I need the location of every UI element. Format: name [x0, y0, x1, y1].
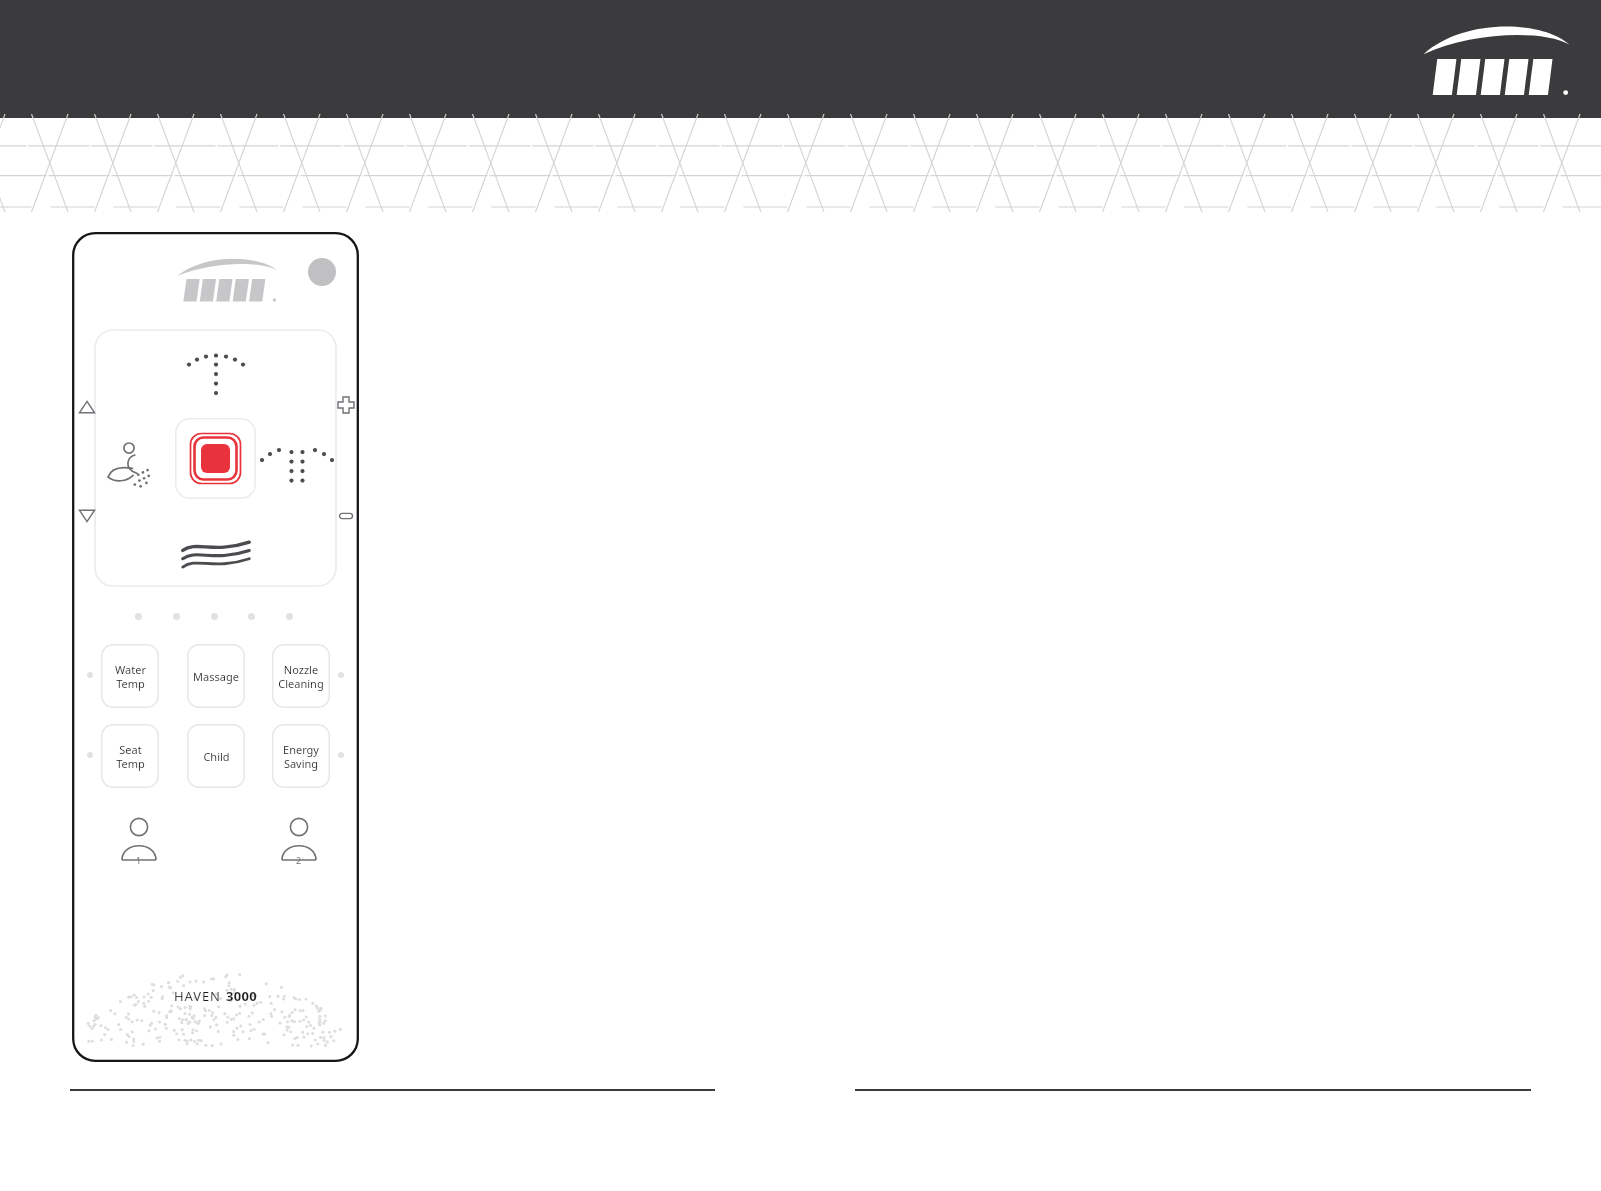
button[interactable]: Minus — [334, 504, 358, 528]
staticText: Massage — [193, 669, 239, 684]
staticText: Child — [203, 749, 230, 764]
button[interactable]: Child — [187, 724, 245, 788]
button[interactable]: Dryer — [179, 527, 253, 573]
staticText: HAVEN — [174, 987, 226, 1005]
button[interactable]: Increase — [74, 395, 100, 421]
button[interactable]: Front wash — [261, 435, 333, 489]
staticText: Seat Temp — [116, 742, 145, 771]
button[interactable]: User preset 2 — [274, 810, 324, 866]
staticText: 1 — [136, 854, 142, 866]
button[interactable]: Energy Saving — [272, 724, 330, 788]
button[interactable]: Plus — [334, 393, 358, 417]
button[interactable]: Water Temp — [101, 644, 159, 708]
staticText: 2 — [296, 854, 302, 866]
button[interactable]: Rear wash — [181, 341, 251, 397]
button[interactable]: Stop — [175, 418, 256, 499]
staticText: Energy Saving — [283, 742, 319, 771]
button[interactable]: Massage — [187, 644, 245, 708]
button[interactable]: Seat wash — [100, 433, 158, 491]
button[interactable]: Seat Temp — [101, 724, 159, 788]
button[interactable]: User preset 1 — [114, 810, 164, 866]
button[interactable]: Decrease — [74, 502, 100, 528]
button[interactable]: Nozzle Cleaning — [272, 644, 330, 708]
staticText: 3000 — [226, 987, 257, 1005]
staticText: Water Temp — [115, 662, 146, 691]
staticText: Nozzle Cleaning — [278, 662, 324, 691]
